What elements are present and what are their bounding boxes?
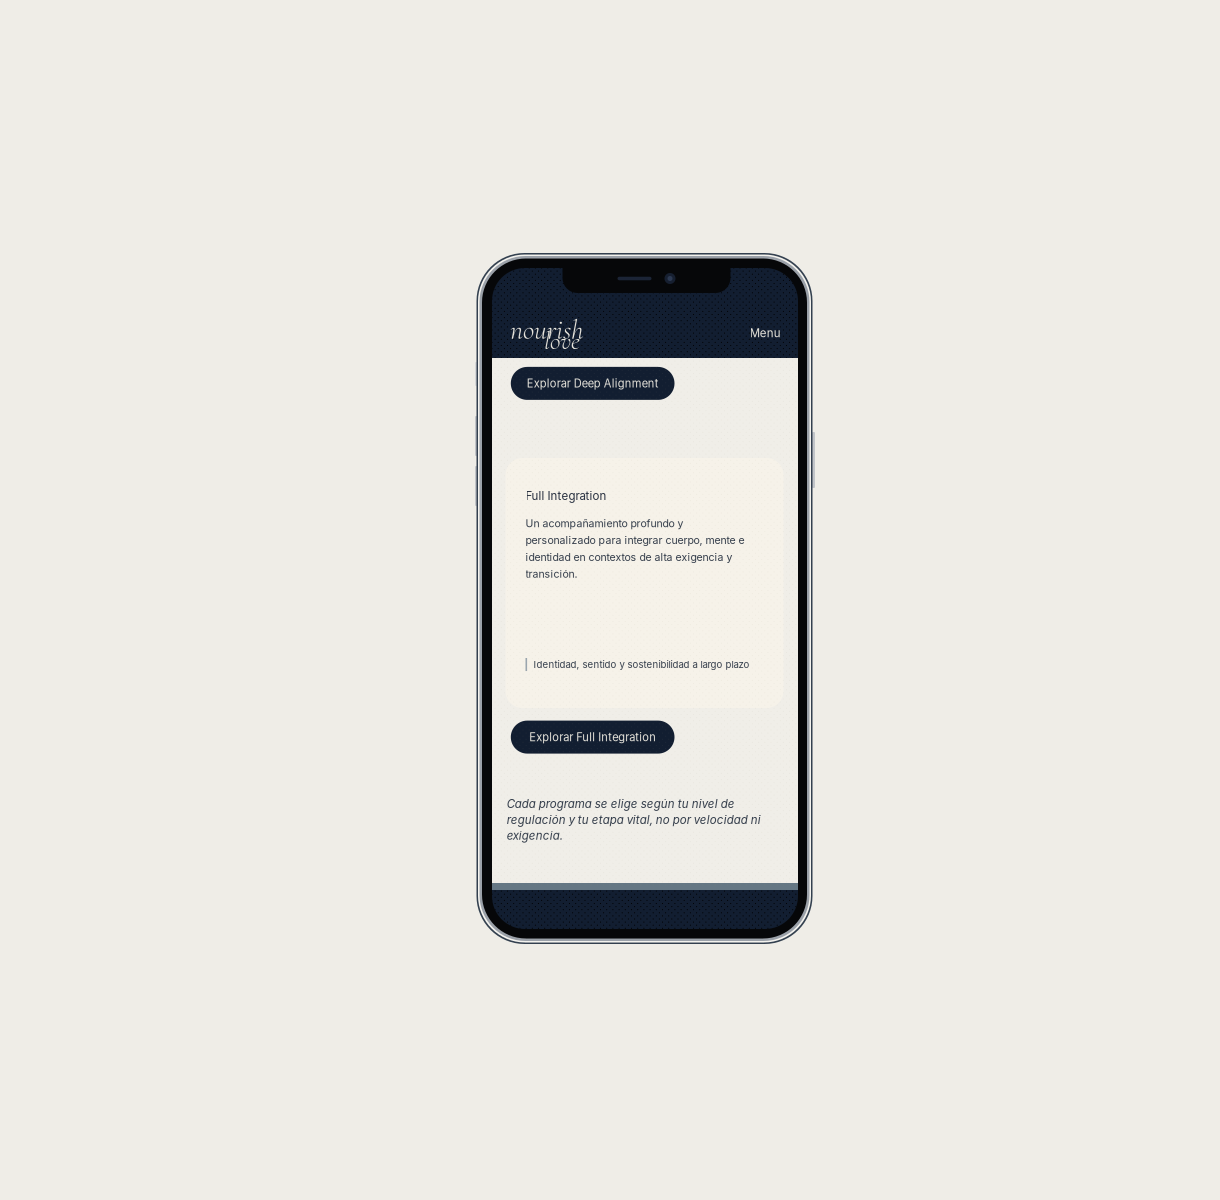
button[interactable]: Menu xyxy=(737,320,781,346)
staticText: Explorar Full Integration xyxy=(529,730,656,744)
staticText: Explorar Deep Alignment xyxy=(527,377,659,390)
staticText: Full Integration xyxy=(525,489,606,503)
staticText: nourish xyxy=(510,313,583,347)
staticText: love xyxy=(544,325,580,356)
button[interactable]: Explorar Full Integration xyxy=(511,721,674,754)
staticText: Identidad, sentido y sostenibilidad a la… xyxy=(534,659,750,670)
staticText: Menu xyxy=(750,326,781,340)
button[interactable]: Explorar Deep Alignment xyxy=(511,367,674,400)
staticText: Un acompañamiento profundo y personaliza… xyxy=(525,517,744,580)
staticText: Cada programa se elige según tu nivel de… xyxy=(507,797,761,842)
